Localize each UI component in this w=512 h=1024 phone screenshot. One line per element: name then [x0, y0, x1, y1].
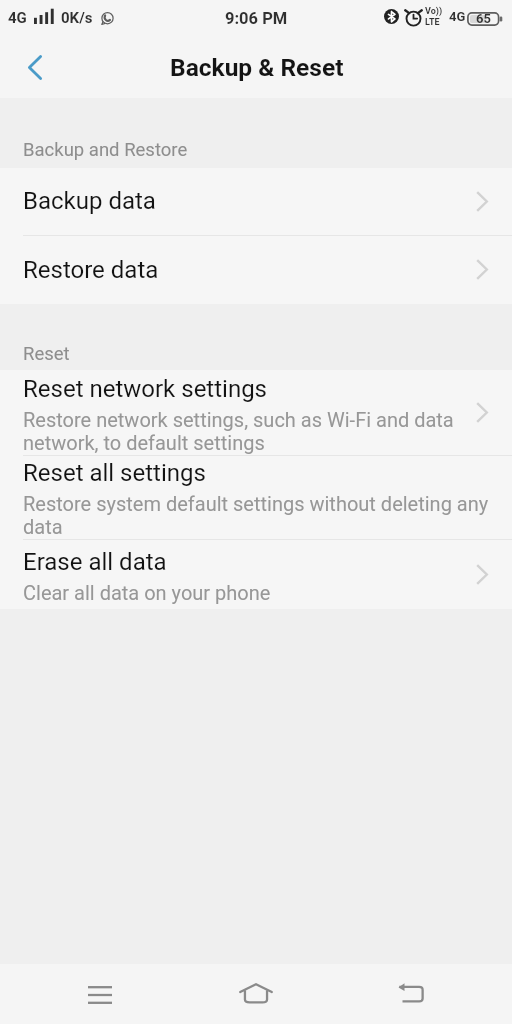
button[interactable]: Back	[0, 36, 62, 98]
staticText: 9:06 PM	[225, 9, 288, 28]
staticText: Restore network settings, such as Wi-Fi …	[23, 409, 483, 455]
button[interactable]: Backup data	[0, 168, 512, 235]
staticText: Backup data	[23, 187, 156, 215]
staticText: Restore data	[23, 256, 159, 284]
staticText: 4G	[449, 9, 466, 24]
staticText: 0K/s	[61, 9, 93, 27]
staticText: 4G	[8, 9, 27, 27]
button[interactable]: Back	[372, 964, 452, 1024]
button[interactable]: Erase all data	[0, 539, 512, 609]
staticText: Reset	[23, 343, 70, 365]
staticText: LTE	[425, 17, 440, 28]
staticText: 65	[476, 11, 491, 26]
button[interactable]: Reset all settings	[0, 455, 512, 539]
button[interactable]: Home	[216, 964, 296, 1024]
button[interactable]: Reset network settings	[0, 370, 512, 455]
button[interactable]: Restore data	[0, 235, 512, 304]
staticText: Vo))	[425, 6, 443, 17]
button[interactable]: Recent apps	[60, 964, 140, 1024]
staticText: Restore system default settings without …	[23, 493, 512, 539]
staticText: Backup and Restore	[23, 139, 188, 161]
staticText: Reset all settings	[23, 459, 206, 487]
staticText: Reset network settings	[23, 375, 268, 403]
staticText: Backup & Reset	[170, 53, 344, 82]
staticText: Erase all data	[23, 548, 167, 576]
staticText: Clear all data on your phone	[23, 582, 271, 605]
